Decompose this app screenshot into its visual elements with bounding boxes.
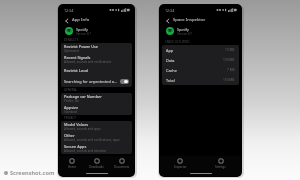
staticText: Standard [64, 110, 77, 114]
staticText: Cache [166, 68, 227, 73]
staticText: Package car Number [64, 94, 102, 99]
staticText: Profile, file [64, 99, 79, 103]
button[interactable]: Restrict Power Use [61, 43, 132, 54]
staticText: Other [64, 133, 75, 138]
staticText: DEFAULTS [64, 38, 79, 42]
staticText: Data [166, 58, 223, 63]
staticText: Optimized [64, 49, 79, 53]
button[interactable]: Appsize [61, 104, 132, 115]
button[interactable]: App [162, 45, 239, 55]
staticText: Recent Signals [64, 55, 91, 60]
staticText: PRIVACY [64, 116, 76, 120]
button[interactable]: Home [59, 156, 84, 171]
staticText: Settings [215, 165, 226, 169]
staticText: Allowed, sounds and apps [64, 127, 101, 131]
staticText: Spotify [76, 27, 88, 32]
staticText: SPACE OCCUPIED [165, 40, 190, 44]
button[interactable]: Package car Number [61, 93, 132, 104]
button[interactable]: Restrict Local [61, 65, 132, 76]
staticText: Total [166, 78, 223, 83]
staticText: Version 8.7 [177, 32, 192, 36]
button[interactable]: Cache [162, 65, 239, 75]
button[interactable]: Documents [109, 156, 134, 171]
button[interactable]: Data [162, 55, 239, 65]
staticText: 12:34 [165, 8, 175, 13]
button[interactable]: Secure Apps [61, 143, 132, 154]
button[interactable]: Model Values [61, 121, 132, 132]
staticText: Space Inspektor [173, 17, 206, 23]
staticText: Downloads [89, 165, 104, 169]
staticText: App Info [72, 17, 90, 23]
staticText: Model Values [64, 122, 89, 127]
staticText: 12:34 [64, 8, 74, 13]
staticText: Secure Apps [64, 144, 87, 149]
button[interactable]: Recent Signals [61, 54, 132, 65]
staticText: Screenshot.com [10, 169, 55, 177]
staticText: Restrict Power Use [64, 44, 99, 49]
staticText: 7 MB [227, 68, 235, 72]
staticText: Allowed, sounds and notifications [64, 60, 112, 64]
staticText: Allowed, sounds and vibration [64, 149, 107, 153]
button[interactable]: Back [62, 16, 71, 25]
staticText: 150 MB [223, 78, 235, 82]
button[interactable]: Back [163, 16, 172, 25]
button[interactable]: Total [162, 75, 239, 85]
staticText: Appsize [64, 105, 79, 110]
staticText: App [166, 48, 225, 53]
staticText: GENERAL [64, 88, 78, 92]
staticText: Inspector [174, 165, 187, 169]
staticText: Home [68, 165, 76, 169]
button[interactable]: Other [61, 132, 132, 143]
staticText: Documents [114, 165, 130, 169]
staticText: Restrict Local [64, 68, 89, 73]
button[interactable]: Downloads [84, 156, 109, 171]
staticText: Spotify [177, 27, 189, 32]
button[interactable]: Settings [200, 156, 241, 171]
staticText: Searching for unprotected app settings [64, 79, 118, 84]
staticText: Allowed, sounds and notifications, apps [64, 138, 120, 142]
staticText: Version 8.7 [76, 32, 91, 36]
button[interactable]: Searching for unprotected app settings [61, 76, 132, 87]
staticText: 130 MB [223, 58, 235, 62]
button[interactable]: Inspector [160, 156, 200, 171]
staticText: 13 MB [225, 48, 235, 52]
